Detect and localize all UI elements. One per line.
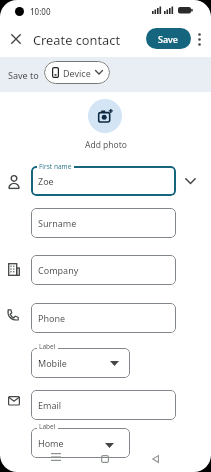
- button[interactable]: [44, 447, 68, 467]
- button[interactable]: Home: [31, 428, 130, 458]
- staticText: Surname: [38, 217, 77, 229]
- staticText: Zoe: [38, 175, 54, 187]
- staticText: Phone: [38, 312, 66, 324]
- button[interactable]: Device: [44, 61, 110, 84]
- button[interactable]: Mobile: [31, 348, 130, 378]
- button[interactable]: [143, 449, 167, 469]
- staticText: Label: [39, 422, 56, 431]
- button[interactable]: [88, 99, 122, 133]
- staticText: Create contact: [33, 31, 121, 48]
- staticText: 10:00: [30, 6, 51, 17]
- staticText: Save: [158, 33, 179, 45]
- staticText: Add photo: [85, 139, 127, 151]
- button[interactable]: [185, 178, 196, 185]
- button[interactable]: Surname: [31, 208, 176, 238]
- button[interactable]: [6, 29, 26, 49]
- button[interactable]: [192, 30, 206, 48]
- staticText: Mobile: [38, 357, 67, 369]
- button[interactable]: Phone: [31, 303, 176, 333]
- staticText: Save to: [8, 69, 39, 81]
- staticText: Label: [39, 342, 56, 351]
- button[interactable]: Save: [146, 28, 191, 49]
- staticText: First name: [39, 162, 72, 171]
- button[interactable]: Zoe: [31, 166, 176, 196]
- button[interactable]: [93, 449, 117, 469]
- staticText: Home: [38, 437, 64, 449]
- staticText: Device: [63, 67, 91, 79]
- staticText: Email: [38, 399, 62, 411]
- staticText: Company: [38, 264, 79, 276]
- button[interactable]: Company: [31, 255, 176, 285]
- button[interactable]: Email: [31, 390, 176, 420]
